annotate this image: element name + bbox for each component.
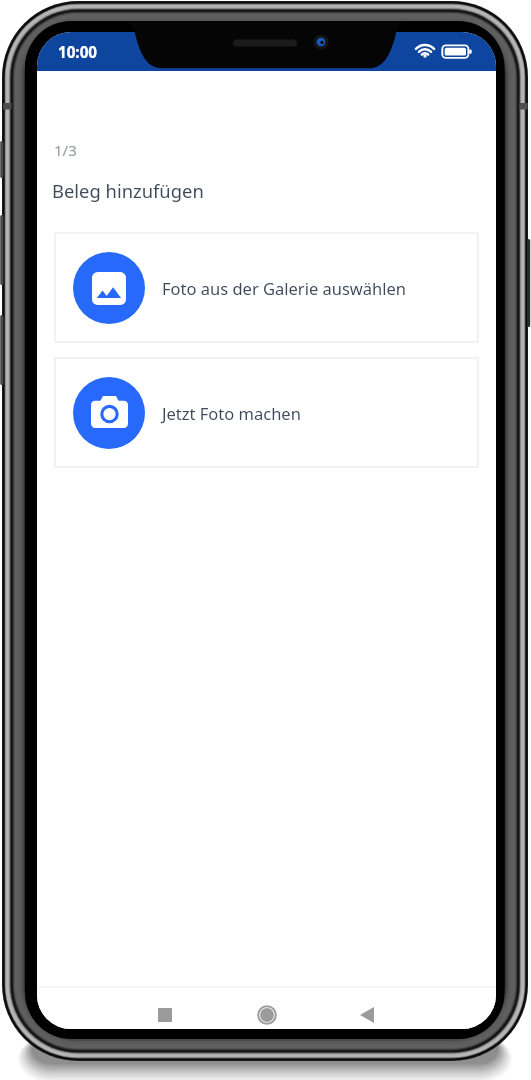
button[interactable]: Back [346,994,388,1029]
staticText: Foto aus der Galerie auswählen [162,277,407,299]
staticText: 10:00 [58,42,98,63]
button[interactable]: Jetzt Foto machen [55,358,478,467]
staticText: 1/3 [54,140,77,160]
button[interactable]: Home [246,994,288,1029]
button[interactable]: Recent apps [144,994,186,1029]
staticText: Jetzt Foto machen [162,402,301,424]
button[interactable]: Foto aus der Galerie auswählen [55,233,478,342]
staticText: Beleg hinzufügen [52,178,204,203]
